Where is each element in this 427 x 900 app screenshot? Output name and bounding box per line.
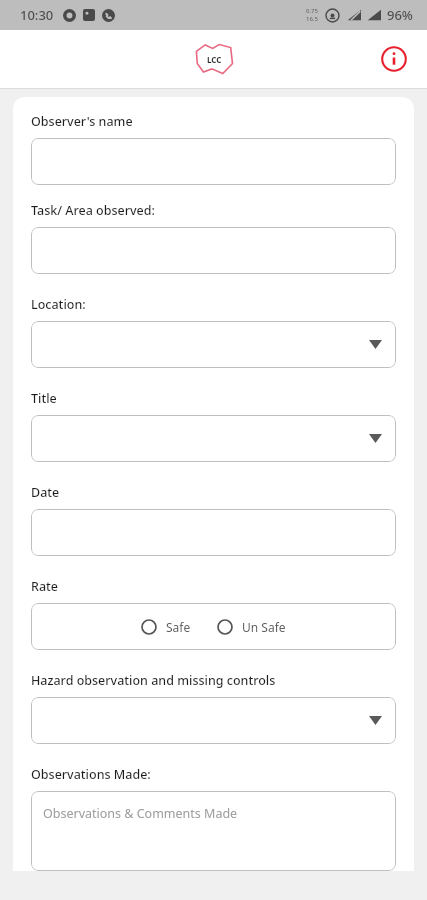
- button[interactable]: [31, 509, 396, 556]
- staticText: Un Safe: [242, 619, 286, 635]
- staticText: LCC: [207, 54, 222, 65]
- button[interactable]: [31, 697, 396, 744]
- staticText: Observer's name: [31, 113, 133, 130]
- button[interactable]: Un Safe: [215, 615, 288, 639]
- staticText: Location:: [31, 296, 86, 313]
- button[interactable]: [31, 138, 396, 185]
- button[interactable]: LCC logo: [192, 40, 236, 78]
- staticText: Date: [31, 484, 60, 501]
- button[interactable]: [31, 415, 396, 462]
- staticText: 16.5: [306, 15, 318, 23]
- button[interactable]: Safe: [139, 615, 193, 639]
- staticText: 0.75: [306, 7, 318, 15]
- staticText: Rate: [31, 578, 59, 595]
- staticText: 10:30: [20, 6, 54, 24]
- staticText: Task/ Area observed:: [31, 202, 155, 219]
- staticText: Safe: [166, 619, 191, 635]
- staticText: 96%: [387, 6, 413, 24]
- staticText: Title: [31, 390, 57, 407]
- staticText: Hazard observation and missing controls: [31, 672, 276, 689]
- staticText: Observations Made:: [31, 766, 151, 783]
- button[interactable]: [31, 227, 396, 274]
- button[interactable]: Information: [377, 42, 411, 76]
- button[interactable]: Observations & Comments Made: [31, 791, 396, 871]
- button[interactable]: [31, 321, 396, 368]
- staticText: Observations & Comments Made: [43, 805, 238, 822]
